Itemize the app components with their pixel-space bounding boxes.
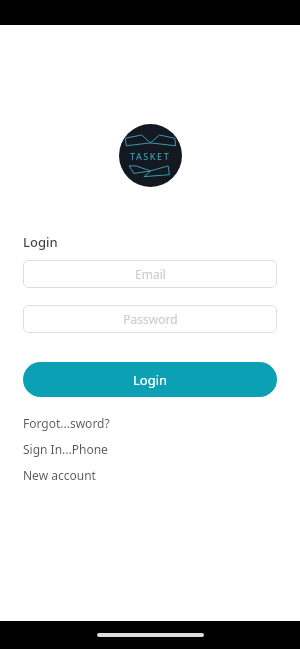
staticText: Login — [133, 371, 168, 389]
button[interactable]: Forgot...sword? — [0, 410, 300, 436]
button[interactable]: Password — [23, 305, 277, 333]
staticText: Sign In...Phone — [23, 441, 108, 457]
staticText: Forgot...sword? — [23, 415, 110, 431]
staticText: New account — [23, 467, 96, 483]
button[interactable]: Login — [23, 362, 277, 397]
staticText: Login — [23, 233, 58, 251]
button[interactable]: Sign In...Phone — [0, 436, 300, 462]
staticText: Password — [123, 311, 178, 327]
button[interactable]: Email — [23, 260, 277, 288]
staticText: TASKET — [130, 150, 171, 162]
button[interactable]: New account — [0, 462, 300, 488]
other: Tasket logo — [119, 124, 182, 187]
staticText: Email — [135, 266, 166, 282]
